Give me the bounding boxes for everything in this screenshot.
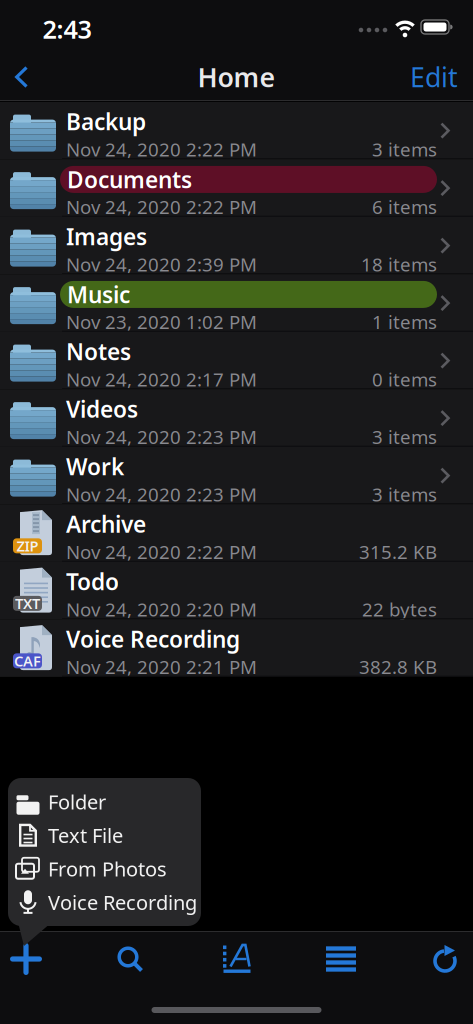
staticText: 18 items <box>361 252 437 277</box>
button[interactable]: Images <box>0 218 473 275</box>
staticText: Work <box>66 451 124 481</box>
button[interactable]: Videos <box>0 390 473 448</box>
staticText: CAF <box>14 651 41 671</box>
staticText: Nov 24, 2020 2:20 PM <box>66 597 257 622</box>
button[interactable]: ZIP <box>0 505 473 563</box>
staticText: 3 items <box>372 482 437 507</box>
button[interactable]: Add <box>1 934 51 984</box>
staticText: Voice Recording <box>66 624 240 654</box>
button[interactable]: Text File <box>8 818 201 852</box>
staticText: 0 items <box>372 367 437 392</box>
button[interactable]: Notes <box>0 333 473 390</box>
button[interactable]: Sort <box>215 936 259 981</box>
staticText: Home <box>197 59 275 95</box>
button[interactable]: Edit <box>404 53 464 101</box>
staticText: 315.2 KB <box>359 539 437 564</box>
button[interactable]: From Photos <box>8 852 201 885</box>
staticText: 3 items <box>372 137 437 162</box>
button[interactable]: Voice Recording <box>8 885 201 919</box>
button[interactable]: Backup <box>0 103 473 160</box>
staticText: Archive <box>66 509 146 539</box>
staticText: Backup <box>66 106 146 136</box>
staticText: Documents <box>67 164 192 194</box>
staticText: 2:43 <box>42 12 91 46</box>
button[interactable]: CAF <box>0 620 473 678</box>
staticText: From Photos <box>48 855 167 882</box>
staticText: Nov 24, 2020 2:23 PM <box>66 482 257 507</box>
staticText: TXT <box>15 594 40 613</box>
button[interactable]: Back <box>6 57 37 96</box>
staticText: 6 items <box>372 194 437 219</box>
button[interactable]: TXT <box>0 563 473 620</box>
button[interactable]: Refresh <box>425 937 467 981</box>
staticText: Notes <box>66 336 131 366</box>
staticText: Edit <box>410 59 458 95</box>
staticText: Nov 24, 2020 2:22 PM <box>66 539 257 564</box>
staticText: Music <box>67 279 130 309</box>
staticText: Nov 24, 2020 2:22 PM <box>66 137 257 162</box>
staticText: 22 bytes <box>362 597 437 622</box>
staticText: Images <box>66 221 147 251</box>
button[interactable]: Search <box>109 938 151 980</box>
staticText: Nov 23, 2020 1:02 PM <box>66 309 257 334</box>
staticText: Nov 24, 2020 2:23 PM <box>66 424 257 449</box>
button[interactable]: Work <box>0 448 473 505</box>
staticText: Videos <box>66 394 138 424</box>
staticText: Nov 24, 2020 2:39 PM <box>66 252 257 277</box>
staticText: Nov 24, 2020 2:21 PM <box>66 654 257 679</box>
staticText: Nov 24, 2020 2:17 PM <box>66 367 257 392</box>
staticText: 3 items <box>372 424 437 449</box>
staticText: 1 items <box>372 309 437 334</box>
button[interactable]: Music <box>0 275 473 333</box>
staticText: Voice Recording <box>48 889 197 916</box>
button[interactable]: Documents <box>0 160 473 218</box>
button[interactable]: View options <box>318 938 364 980</box>
button[interactable]: Folder <box>8 785 201 818</box>
staticText: Folder <box>48 788 106 815</box>
staticText: 382.8 KB <box>359 654 437 679</box>
staticText: Nov 24, 2020 2:22 PM <box>66 194 257 219</box>
staticText: ZIP <box>16 536 38 556</box>
staticText: Text File <box>48 822 123 849</box>
staticText: Todo <box>66 566 119 596</box>
